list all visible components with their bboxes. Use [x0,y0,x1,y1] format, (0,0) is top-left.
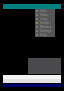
button[interactable]: Save [35,9,55,13]
button[interactable]: Settings [35,29,55,33]
staticText: Help [40,33,47,37]
staticText: Save [40,9,47,13]
staticText: Details [40,21,50,25]
button[interactable]: Share [35,13,55,17]
staticText: Settings [40,29,52,33]
staticText: Share [40,13,49,17]
button[interactable]: Details [35,21,55,25]
button[interactable]: Rename [35,25,55,29]
staticText: Copy [40,17,48,21]
button[interactable]: Copy [35,17,55,21]
staticText: Rename [40,25,52,29]
button[interactable]: Help [35,33,55,37]
